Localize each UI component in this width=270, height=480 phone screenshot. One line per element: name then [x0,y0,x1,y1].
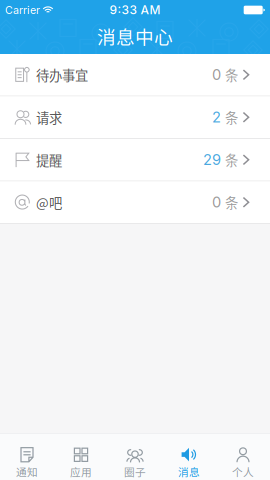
staticText: 9:33 AM [109,3,160,17]
staticText: 应用 [70,464,92,479]
staticText: 29 [203,151,221,169]
staticText: 条 [225,65,238,84]
staticText: 消息 [178,464,200,479]
staticText: 通知 [16,464,38,479]
staticText: 2 [212,108,221,126]
button[interactable]: 待办事宜 [0,54,270,96]
button[interactable]: 应用 [54,434,108,480]
staticText: 圈子 [124,464,146,479]
staticText: 条 [225,193,238,212]
staticText: Carrier [5,3,40,16]
button[interactable]: @吧 [0,181,270,224]
button[interactable]: 提醒 [0,139,270,181]
staticText: 0 [212,66,221,84]
staticText: 提醒 [36,150,62,169]
button[interactable]: 消息 [162,434,216,480]
button[interactable]: 通知 [0,434,54,480]
staticText: 条 [225,108,238,127]
staticText: 0 [212,193,221,211]
button[interactable]: 请求 [0,96,270,139]
button[interactable]: 个人 [216,434,270,480]
staticText: @吧 [36,193,62,212]
button[interactable]: 圈子 [108,434,162,480]
staticText: 消息中心 [97,22,173,49]
staticText: 个人 [232,464,254,479]
staticText: 请求 [36,108,62,127]
staticText: 条 [225,150,238,169]
staticText: 待办事宜 [36,65,88,84]
